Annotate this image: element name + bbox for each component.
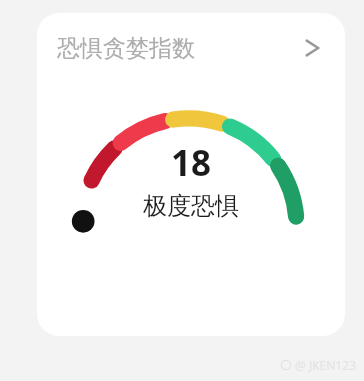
staticText: 极度恐惧 [143, 191, 239, 221]
other: More details [301, 35, 327, 61]
staticText: 恐惧贪婪指数 [57, 34, 195, 63]
button[interactable]: 恐惧贪婪指数 [57, 13, 327, 83]
button[interactable]: 恐惧贪婪指数 [37, 13, 345, 336]
staticText: 18 [171, 139, 212, 187]
staticText: @ JKEN123 [295, 357, 356, 373]
